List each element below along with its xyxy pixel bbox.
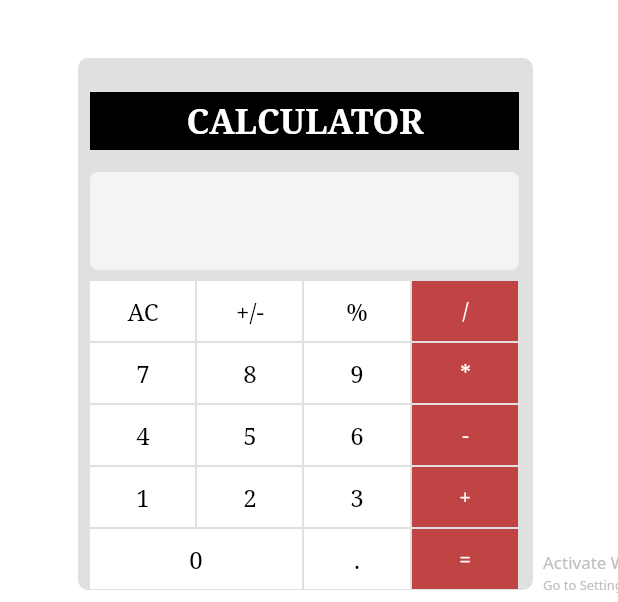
button[interactable]: Add: [412, 467, 518, 527]
button[interactable]: Divide: [412, 281, 518, 341]
staticText: Activate Windows: [543, 551, 618, 574]
button[interactable]: Equals: [412, 529, 518, 589]
staticText: 3: [350, 481, 364, 514]
button[interactable]: 4: [90, 405, 195, 465]
staticText: /: [462, 297, 469, 326]
staticText: CALCULATOR: [186, 98, 424, 144]
button[interactable]: 3: [304, 467, 410, 527]
staticText: %: [346, 295, 368, 328]
button[interactable]: Percent: [304, 281, 410, 341]
button[interactable]: 6: [304, 405, 410, 465]
staticText: 7: [136, 357, 150, 390]
staticText: -: [462, 421, 469, 450]
staticText: 2: [243, 481, 257, 514]
button[interactable]: Multiply: [412, 343, 518, 403]
staticText: 1: [136, 481, 150, 514]
staticText: +: [459, 483, 471, 512]
button[interactable]: 8: [197, 343, 302, 403]
button[interactable]: Subtract: [412, 405, 518, 465]
button[interactable]: 7: [90, 343, 195, 403]
staticText: +/-: [236, 295, 264, 328]
staticText: AC: [127, 295, 159, 328]
button[interactable]: 1: [90, 467, 195, 527]
staticText: =: [459, 545, 471, 574]
staticText: .: [354, 543, 360, 576]
button[interactable]: All clear: [90, 281, 195, 341]
button[interactable]: 5: [197, 405, 302, 465]
button[interactable]: 0: [90, 529, 302, 589]
staticText: 4: [136, 419, 150, 452]
staticText: 6: [350, 419, 364, 452]
staticText: 8: [243, 357, 257, 390]
button[interactable]: Toggle sign: [197, 281, 302, 341]
button[interactable]: 2: [197, 467, 302, 527]
button[interactable]: 9: [304, 343, 410, 403]
staticText: 9: [350, 357, 364, 390]
staticText: 5: [243, 419, 257, 452]
button[interactable]: Decimal point: [304, 529, 410, 589]
staticText: *: [460, 359, 471, 388]
staticText: 0: [189, 543, 203, 576]
staticText: Go to Settings to: [543, 576, 618, 594]
